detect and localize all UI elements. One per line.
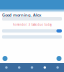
- staticText: Good morning, Alex: [2, 12, 41, 18]
- staticText: Reminder: 3 tasks due today: [12, 23, 51, 26]
